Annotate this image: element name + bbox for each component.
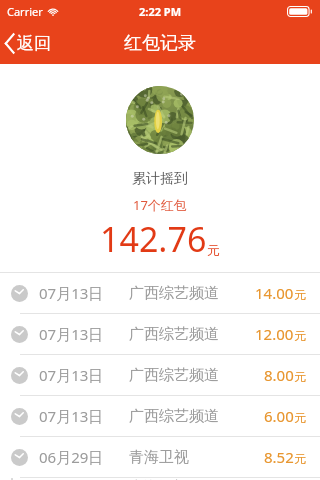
staticText: 元 (294, 328, 306, 343)
other: Time (11, 478, 28, 480)
other: Time (11, 326, 28, 343)
button[interactable]: Time (0, 355, 320, 395)
staticText: 青海卫视 (129, 478, 189, 480)
other: Time (11, 408, 28, 425)
staticText: 元 (294, 410, 306, 425)
staticText: 广西综艺频道 (129, 407, 219, 426)
button[interactable]: Time (0, 437, 320, 477)
staticText: 07月13日 (39, 283, 104, 303)
staticText: 8.52 (264, 447, 294, 467)
staticText: 元 (294, 369, 306, 384)
staticText: 14.00 (255, 283, 294, 303)
staticText: 元 (294, 451, 306, 466)
button[interactable]: Time (0, 396, 320, 436)
staticText: 07月13日 (39, 324, 104, 344)
staticText: 07月13日 (39, 365, 104, 385)
button[interactable]: 返回 (0, 22, 61, 64)
other: Time (11, 367, 28, 384)
staticText: 元 (207, 242, 220, 258)
staticText: 广西综艺频道 (129, 366, 219, 385)
staticText: 8.00 (264, 365, 294, 385)
button[interactable]: Time (0, 273, 320, 313)
staticText: 元 (294, 287, 306, 302)
staticText: 青海卫视 (129, 448, 189, 467)
staticText: 142.76 (100, 216, 207, 262)
staticText: 累计摇到 (132, 170, 188, 188)
other: Time (11, 285, 28, 302)
staticText: 6.00 (264, 406, 294, 426)
other: Time (11, 449, 28, 466)
staticText: 红包记录 (124, 32, 196, 55)
button[interactable]: Time (0, 478, 320, 480)
button[interactable]: Time (0, 314, 320, 354)
staticText: 返回 (17, 33, 51, 54)
staticText: 07月13日 (39, 406, 104, 426)
staticText: 2:22 PM (139, 4, 182, 19)
other: Profile photo (126, 86, 194, 154)
staticText: 广西综艺频道 (129, 284, 219, 303)
staticText: 广西综艺频道 (129, 325, 219, 344)
staticText: 12.00 (255, 324, 294, 344)
staticText: 17个红包 (133, 196, 187, 214)
staticText: Carrier (7, 4, 43, 19)
staticText: 06月29日 (39, 447, 104, 467)
